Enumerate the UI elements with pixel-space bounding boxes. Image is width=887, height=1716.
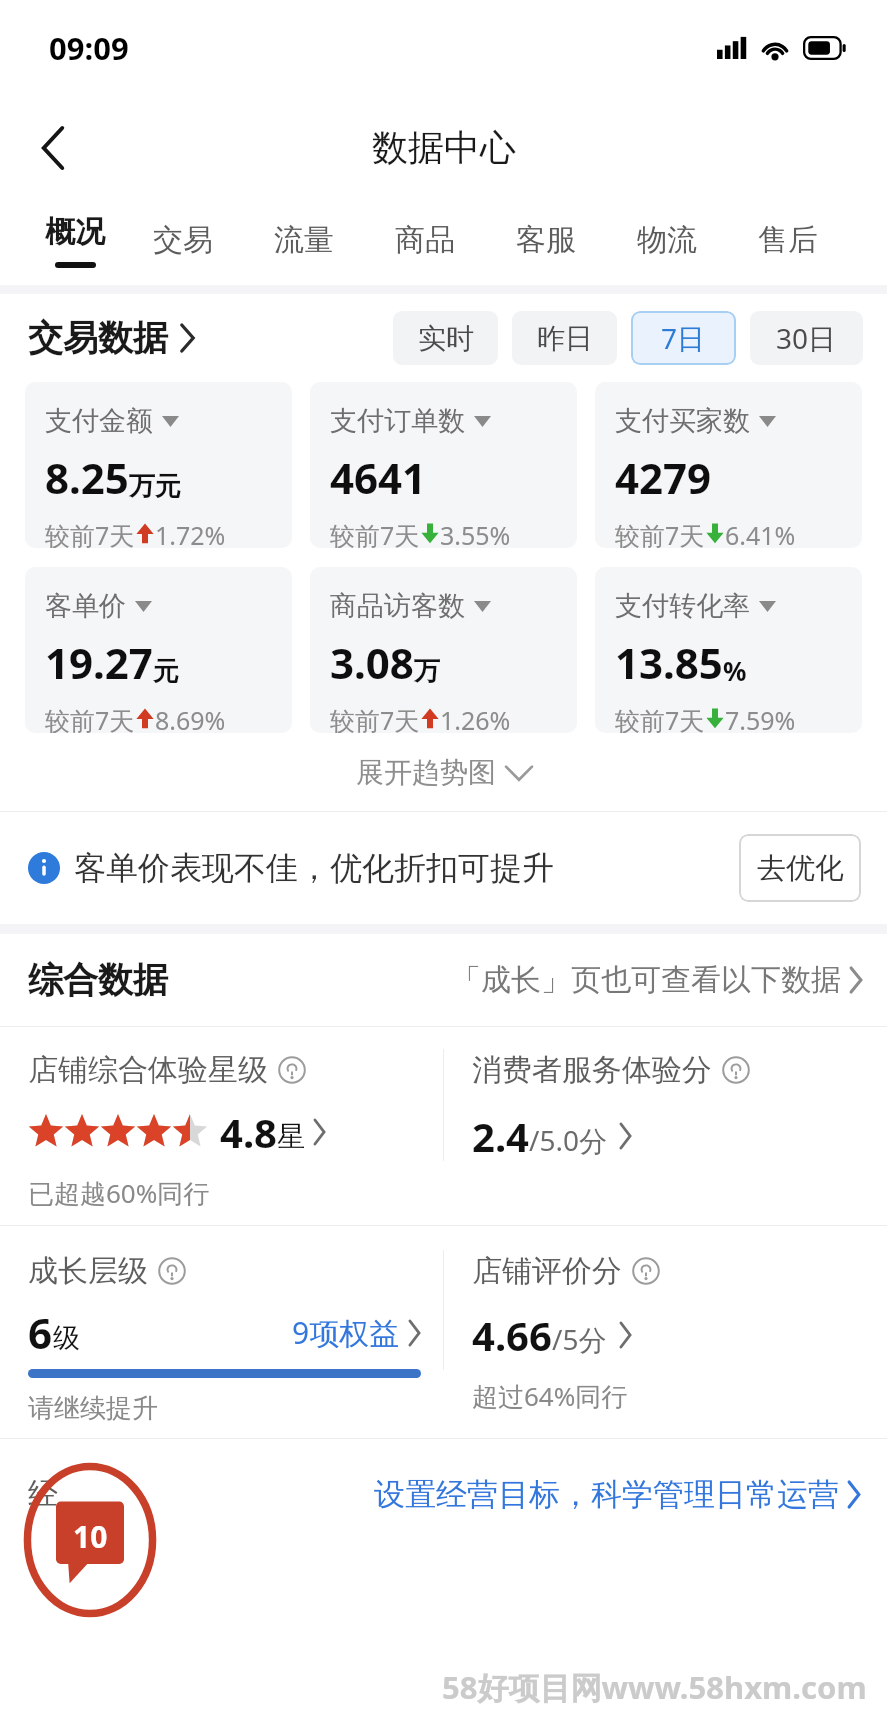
button[interactable]: 店铺综合体验星级 — [0, 1027, 443, 1225]
staticText: 消费者服务体验分 — [472, 1051, 712, 1089]
staticText: 超过64%同行 — [472, 1378, 628, 1414]
staticText: 已超越60%同行 — [28, 1175, 210, 1211]
button[interactable]: 商品访客数 — [310, 567, 577, 733]
button[interactable]: Messages — [22, 1460, 158, 1620]
staticText: 7日 — [661, 319, 706, 357]
staticText: 交易 — [153, 221, 213, 259]
staticText: 交易数据 — [28, 316, 168, 360]
button[interactable]: 实时 — [393, 311, 498, 365]
staticText: 元 — [153, 655, 179, 688]
staticText: 58好项目网www.58hxm.com — [442, 1666, 867, 1708]
other: Help — [722, 1056, 750, 1084]
staticText: /5分 — [552, 1320, 607, 1358]
button[interactable]: 7日 — [631, 311, 736, 365]
staticText: 较前7天 — [45, 703, 135, 733]
staticText: 支付订单数 — [330, 404, 465, 438]
staticText: 较前7天 — [330, 703, 420, 733]
staticText: 9项权益 — [292, 1312, 400, 1353]
staticText: 实时 — [418, 321, 474, 356]
staticText: 支付买家数 — [615, 404, 750, 438]
button[interactable]: 30日 — [750, 311, 863, 365]
button[interactable]: 店铺评价分 — [444, 1226, 887, 1438]
button[interactable]: 经 — [0, 1439, 887, 1549]
staticText: 8.69% — [155, 703, 226, 733]
staticText: 展开趋势图 — [356, 755, 496, 790]
button[interactable]: 成长层级 — [0, 1226, 443, 1438]
staticText: 售后 — [758, 221, 818, 259]
staticText: 7.59% — [725, 703, 796, 733]
staticText: 商品 — [395, 221, 455, 259]
button[interactable]: 支付订单数 — [310, 382, 577, 548]
staticText: 数据中心 — [372, 125, 516, 170]
staticText: 3.08 — [330, 634, 414, 691]
staticText: 星 — [277, 1119, 305, 1154]
button[interactable]: 物流 — [606, 195, 727, 285]
staticText: 8.25 — [45, 449, 129, 506]
button[interactable]: 交易 — [122, 195, 243, 285]
staticText: 30日 — [776, 319, 837, 357]
staticText: 09:09 — [49, 27, 129, 69]
button[interactable]: 商品 — [364, 195, 485, 285]
staticText: 「成长」页也可查看以下数据 — [451, 961, 841, 999]
staticText: 1.72% — [155, 518, 226, 548]
staticText: 客服 — [516, 221, 576, 259]
staticText: 支付转化率 — [615, 589, 750, 623]
button[interactable]: 客服 — [485, 195, 606, 285]
button[interactable]: 支付买家数 — [595, 382, 862, 548]
staticText: 概况 — [45, 213, 105, 251]
staticText: 综合数据 — [28, 958, 168, 1002]
button[interactable]: 交易数据 — [28, 316, 195, 360]
staticText: 店铺综合体验星级 — [28, 1051, 268, 1089]
staticText: 4641 — [330, 449, 427, 506]
button[interactable]: 售后 — [727, 195, 848, 285]
button[interactable]: 客单价 — [25, 567, 292, 733]
button[interactable]: 消费者服务体验分 — [444, 1027, 887, 1225]
staticText: /5.0分 — [529, 1121, 607, 1159]
staticText: 昨日 — [537, 321, 593, 356]
button[interactable]: 昨日 — [512, 311, 617, 365]
staticText: 4279 — [615, 449, 712, 506]
staticText: 店铺评价分 — [472, 1252, 622, 1290]
staticText: 成长层级 — [28, 1252, 148, 1290]
staticText: 2.4 — [472, 1109, 529, 1163]
staticText: 级 — [53, 1321, 80, 1355]
staticText: 1.26% — [440, 703, 511, 733]
staticText: 6 — [28, 1304, 53, 1361]
button[interactable]: 流量 — [243, 195, 364, 285]
staticText: 13.85 — [615, 634, 723, 691]
staticText: 流量 — [274, 221, 334, 259]
staticText: 4.8 — [220, 1105, 277, 1159]
staticText: 支付金额 — [45, 404, 153, 438]
button[interactable]: 展开趋势图 — [338, 747, 550, 798]
staticText: 设置经营目标，科学管理日常运营 — [374, 1475, 839, 1514]
staticText: 3.55% — [440, 518, 511, 548]
button[interactable]: 去优化 — [739, 834, 861, 902]
button[interactable]: 概况 — [28, 195, 122, 285]
other: Help — [632, 1257, 660, 1285]
staticText: 去优化 — [757, 850, 844, 887]
staticText: 物流 — [637, 221, 697, 259]
staticText: 4.66 — [472, 1308, 552, 1362]
staticText: 商品访客数 — [330, 589, 465, 623]
staticText: 经 — [28, 1475, 58, 1513]
staticText: 较前7天 — [615, 703, 705, 733]
staticText: 较前7天 — [615, 518, 705, 548]
staticText: 客单价 — [45, 589, 126, 623]
staticText: 万元 — [129, 470, 181, 503]
staticText: 较前7天 — [330, 518, 420, 548]
staticText: 较前7天 — [45, 518, 135, 548]
staticText: 客单价表现不佳，优化折扣可提升 — [74, 848, 554, 888]
staticText: 6.41% — [725, 518, 796, 548]
staticText: 10 — [73, 1516, 108, 1557]
button[interactable]: 支付转化率 — [595, 567, 862, 733]
button[interactable]: Back — [22, 117, 84, 179]
staticText: 请继续提升 — [28, 1392, 158, 1425]
staticText: % — [723, 653, 747, 688]
button[interactable]: 「成长」页也可查看以下数据 — [451, 961, 863, 999]
other: Help — [278, 1056, 306, 1084]
other: Help — [158, 1257, 186, 1285]
button[interactable]: 支付金额 — [25, 382, 292, 548]
staticText: 19.27 — [45, 634, 153, 691]
staticText: 万 — [414, 655, 440, 688]
